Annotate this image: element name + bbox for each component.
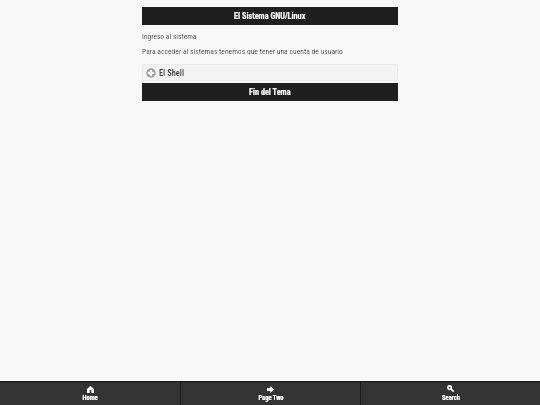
button[interactable]: El Shell xyxy=(142,64,398,81)
staticText: Home xyxy=(82,394,98,402)
button[interactable]: Page Two xyxy=(181,382,360,405)
staticText: El Sistema GNU/Linux xyxy=(234,11,306,21)
button[interactable]: Fin del Tema xyxy=(142,83,398,101)
staticText: Search xyxy=(442,394,460,402)
button[interactable]: Search xyxy=(361,382,540,405)
staticText: Fin del Tema xyxy=(249,87,291,97)
staticText: El Shell xyxy=(159,68,185,78)
button[interactable]: El Sistema GNU/Linux xyxy=(142,7,398,25)
staticText: Page Two xyxy=(258,394,284,402)
staticText: Para acceder al sistemas tenemos que ten… xyxy=(142,47,343,56)
button[interactable]: Home xyxy=(0,382,180,405)
staticText: Ingreso al sistema xyxy=(142,32,197,41)
